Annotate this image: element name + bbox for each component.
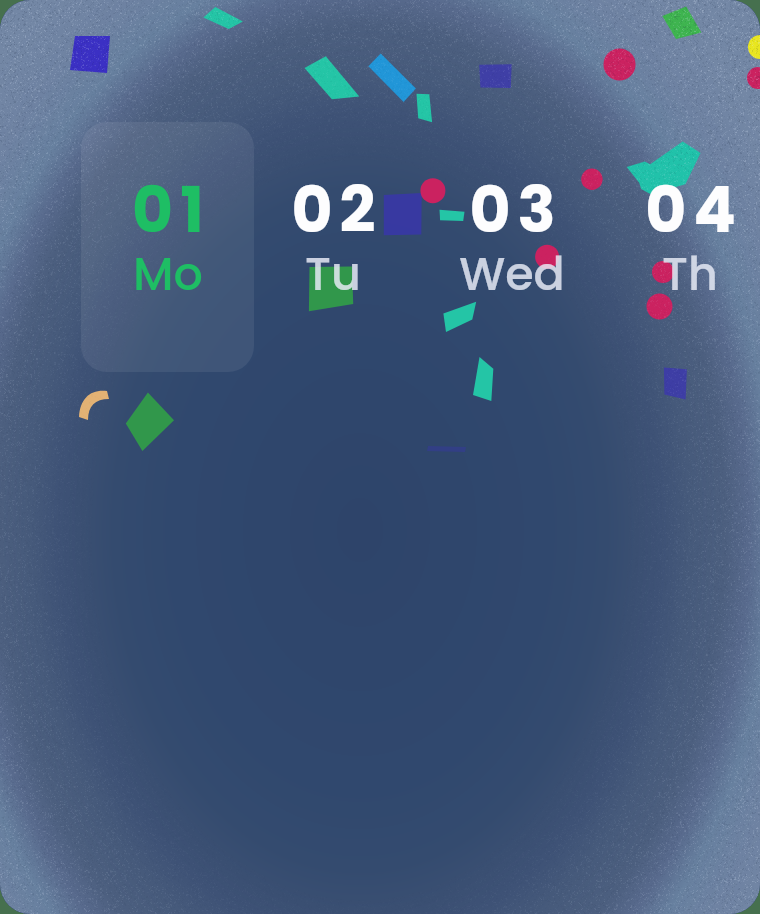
staticText: Wed <box>459 242 565 306</box>
button[interactable]: 04 <box>603 122 760 372</box>
staticText: Mo <box>133 242 203 306</box>
staticText: 02 <box>291 166 383 254</box>
staticText: Th <box>662 242 718 306</box>
staticText: 03 <box>469 166 563 254</box>
staticText: 04 <box>645 166 743 254</box>
staticText: 01 <box>132 166 211 254</box>
button[interactable]: 03 <box>425 122 598 372</box>
button[interactable]: 02 <box>246 122 419 372</box>
button[interactable]: 01 <box>81 122 254 372</box>
staticText: Tu <box>305 242 361 306</box>
